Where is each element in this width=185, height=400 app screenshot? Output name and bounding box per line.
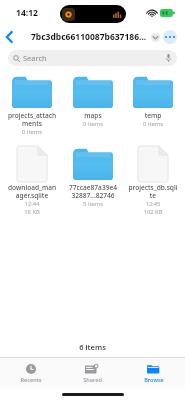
staticText: 77ccae87a39e4 32887...82746 — [65, 183, 121, 200]
button[interactable]: Browse — [123, 358, 185, 388]
staticText: projects_attach ments — [4, 111, 60, 128]
staticText: 12:45 — [125, 200, 181, 208]
button[interactable]: download_man ager.sqlite — [3, 146, 61, 216]
button[interactable]: Back — [0, 26, 18, 48]
staticText: maps — [65, 111, 121, 120]
staticText: 16 KB — [4, 208, 60, 216]
button[interactable]: projects_attach ments — [3, 74, 61, 136]
button[interactable]: Shared — [61, 358, 123, 388]
staticText: 0 items — [4, 128, 60, 136]
button[interactable]: Folder options — [151, 33, 160, 42]
staticText: 0 items — [65, 120, 121, 128]
staticText: projects_db.sqli te — [125, 183, 181, 200]
staticText: Browse — [144, 376, 164, 384]
staticText: Shared — [83, 376, 102, 384]
staticText: Search — [23, 53, 47, 63]
button[interactable]: 77ccae87a39e4 32887...82746 — [64, 146, 122, 208]
button[interactable]: temp — [124, 74, 182, 128]
staticText: 12:44 — [4, 200, 60, 208]
staticText: temp — [125, 111, 181, 120]
staticText: 7bc3dbc66110087b637186... — [31, 31, 147, 43]
staticText: 14:12 — [16, 7, 38, 19]
button[interactable]: More — [163, 30, 177, 44]
button[interactable]: Recents — [0, 358, 61, 388]
staticText: download_man ager.sqlite — [4, 183, 60, 200]
staticText: 5 items — [65, 200, 121, 208]
staticText: 6 items — [79, 342, 106, 352]
staticText: 0 items — [125, 120, 181, 128]
staticText: 102 KB — [125, 208, 181, 216]
staticText: Recents — [20, 376, 42, 384]
button[interactable]: Search — [8, 50, 177, 66]
button[interactable]: maps — [64, 74, 122, 128]
button[interactable]: projects_db.sqli te — [124, 146, 182, 216]
